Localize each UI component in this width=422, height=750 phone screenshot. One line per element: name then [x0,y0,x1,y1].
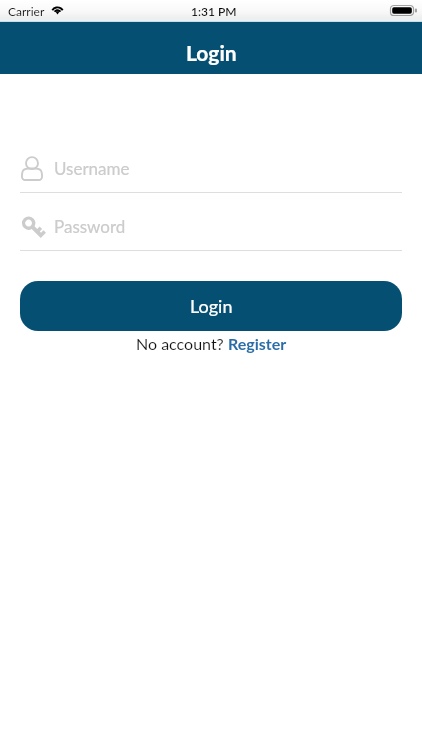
staticText: Register [228,334,287,353]
other: Battery full [390,5,417,16]
staticText: Login [186,40,237,65]
button[interactable]: Register [228,334,287,353]
staticText: Carrier [8,4,45,18]
button[interactable]: Login [20,281,402,331]
staticText: Username [54,158,130,178]
other: Wi-Fi signal [50,5,65,14]
staticText: Password [54,216,126,236]
staticText: 1:31 PM [191,4,237,18]
button[interactable]: Username [20,155,402,193]
staticText: No account? [136,334,228,353]
button[interactable]: Password [20,213,402,251]
other: Username [21,156,43,182]
other: Password [22,215,44,240]
staticText: Login [190,295,233,317]
